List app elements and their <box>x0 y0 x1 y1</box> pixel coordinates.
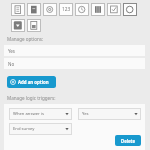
button[interactable] <box>75 3 89 16</box>
button[interactable]: 123 <box>59 3 73 16</box>
button[interactable] <box>27 19 41 32</box>
button[interactable] <box>11 3 25 16</box>
staticText: Add an option <box>18 79 49 85</box>
button[interactable]: Yes <box>4 45 145 56</box>
button[interactable] <box>11 19 25 32</box>
staticText: Delete <box>121 138 135 144</box>
button[interactable]: When answer is <box>9 108 72 120</box>
button[interactable] <box>91 3 105 16</box>
button[interactable]: Add an option <box>7 76 56 88</box>
button[interactable]: End survey <box>9 123 72 135</box>
staticText: Yes <box>82 111 89 117</box>
button[interactable]: Yes <box>78 108 141 120</box>
staticText: End survey <box>13 126 35 132</box>
staticText: When answer is <box>13 111 45 117</box>
staticText: No <box>8 61 15 67</box>
staticText: 123 <box>62 6 71 13</box>
button[interactable] <box>43 3 57 16</box>
button[interactable]: Delete <box>115 135 141 146</box>
staticText: Yes <box>8 48 16 54</box>
staticText: Manage logic triggers: <box>7 95 56 101</box>
button[interactable] <box>107 3 121 16</box>
button[interactable]: No <box>4 58 145 69</box>
staticText: Manage options: <box>7 36 44 42</box>
button[interactable] <box>123 3 137 16</box>
button[interactable] <box>27 3 41 16</box>
